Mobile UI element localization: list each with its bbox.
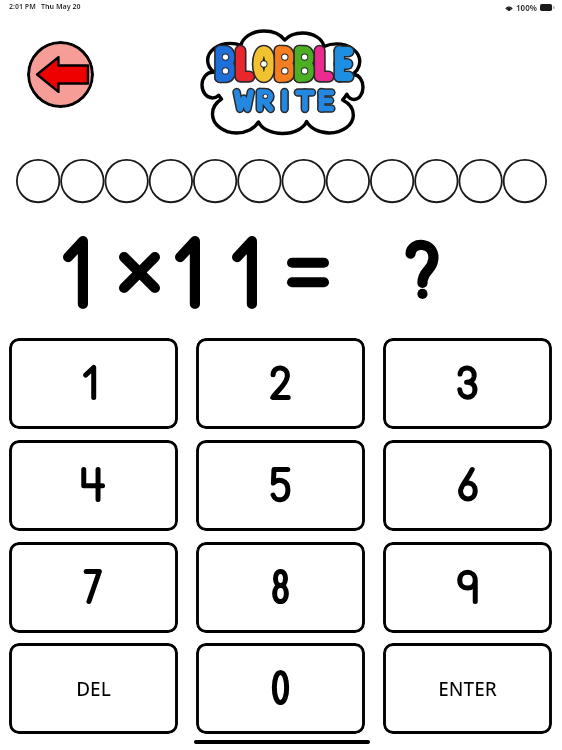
button[interactable]	[9, 338, 178, 429]
button[interactable]	[196, 542, 365, 633]
staticText: 2:01 PM	[9, 2, 36, 12]
button[interactable]	[196, 643, 365, 734]
staticText: ENTER	[438, 676, 497, 702]
button[interactable]	[196, 338, 365, 429]
staticText: DEL	[76, 676, 111, 702]
button[interactable]: Back	[27, 41, 94, 108]
button[interactable]: DEL	[9, 643, 178, 734]
button[interactable]	[383, 542, 552, 633]
button[interactable]	[9, 542, 178, 633]
button[interactable]	[196, 440, 365, 531]
button[interactable]	[9, 440, 178, 531]
staticText: 100%	[516, 2, 537, 13]
button[interactable]	[383, 440, 552, 531]
staticText: Thu May 20	[41, 2, 81, 12]
button[interactable]	[383, 338, 552, 429]
button[interactable]: ENTER	[383, 643, 552, 734]
